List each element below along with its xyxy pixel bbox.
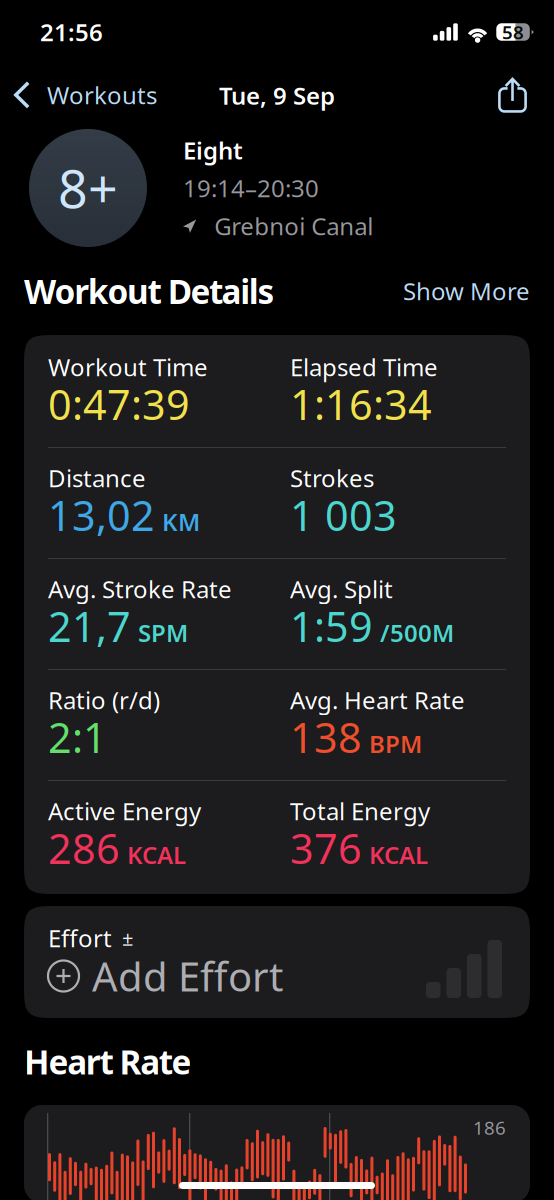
staticText: 58 (502, 20, 524, 44)
staticText: Workout Time (48, 351, 208, 383)
button[interactable]: Share (490, 69, 535, 120)
staticText: 19:14–20:30 (183, 172, 319, 204)
staticText: 21:56 (40, 16, 103, 48)
staticText: 138 (290, 710, 362, 764)
staticText: SPM (138, 617, 188, 649)
staticText: ± (122, 925, 133, 951)
staticText: Avg. Split (290, 573, 393, 605)
staticText: 286 (48, 821, 120, 875)
staticText: 186 (473, 1115, 506, 1140)
staticText: Total Energy (290, 795, 430, 827)
staticText: Elapsed Time (290, 351, 438, 383)
staticText: 0:47:39 (48, 377, 190, 431)
staticText: /500M (380, 617, 454, 649)
staticText: 376 (290, 821, 362, 875)
staticText: Ratio (r/d) (48, 684, 160, 716)
staticText: Avg. Stroke Rate (48, 573, 232, 605)
staticText: 1:16:34 (290, 377, 432, 431)
staticText: 2:1 (48, 710, 107, 764)
staticText: Tue, 9 Sep (219, 80, 335, 111)
staticText: 21,7 (48, 599, 131, 653)
button[interactable]: Show More (403, 275, 530, 307)
staticText: Workouts (47, 79, 157, 111)
button[interactable]: Workouts (14, 69, 167, 121)
staticText: Strokes (290, 462, 374, 494)
staticText: Add Effort (92, 949, 283, 1002)
staticText: Grebnoi Canal (214, 210, 373, 242)
staticText: 1:59 (290, 599, 373, 653)
button[interactable]: Effort (24, 906, 530, 1018)
staticText: Active Energy (48, 795, 201, 827)
staticText: Show More (403, 275, 530, 307)
staticText: Distance (48, 462, 146, 494)
staticText: KCAL (369, 839, 428, 871)
staticText: Avg. Heart Rate (290, 684, 465, 716)
staticText: Heart Rate (24, 1039, 191, 1084)
staticText: KCAL (127, 839, 186, 871)
staticText: BPM (369, 728, 422, 760)
staticText: 13,02 (48, 488, 155, 542)
staticText: 1 003 (290, 488, 397, 542)
staticText: KM (162, 506, 200, 538)
staticText: Effort (48, 922, 112, 954)
staticText: Eight (183, 134, 243, 166)
staticText: Workout Details (24, 269, 274, 313)
staticText: 8+ (58, 153, 118, 223)
